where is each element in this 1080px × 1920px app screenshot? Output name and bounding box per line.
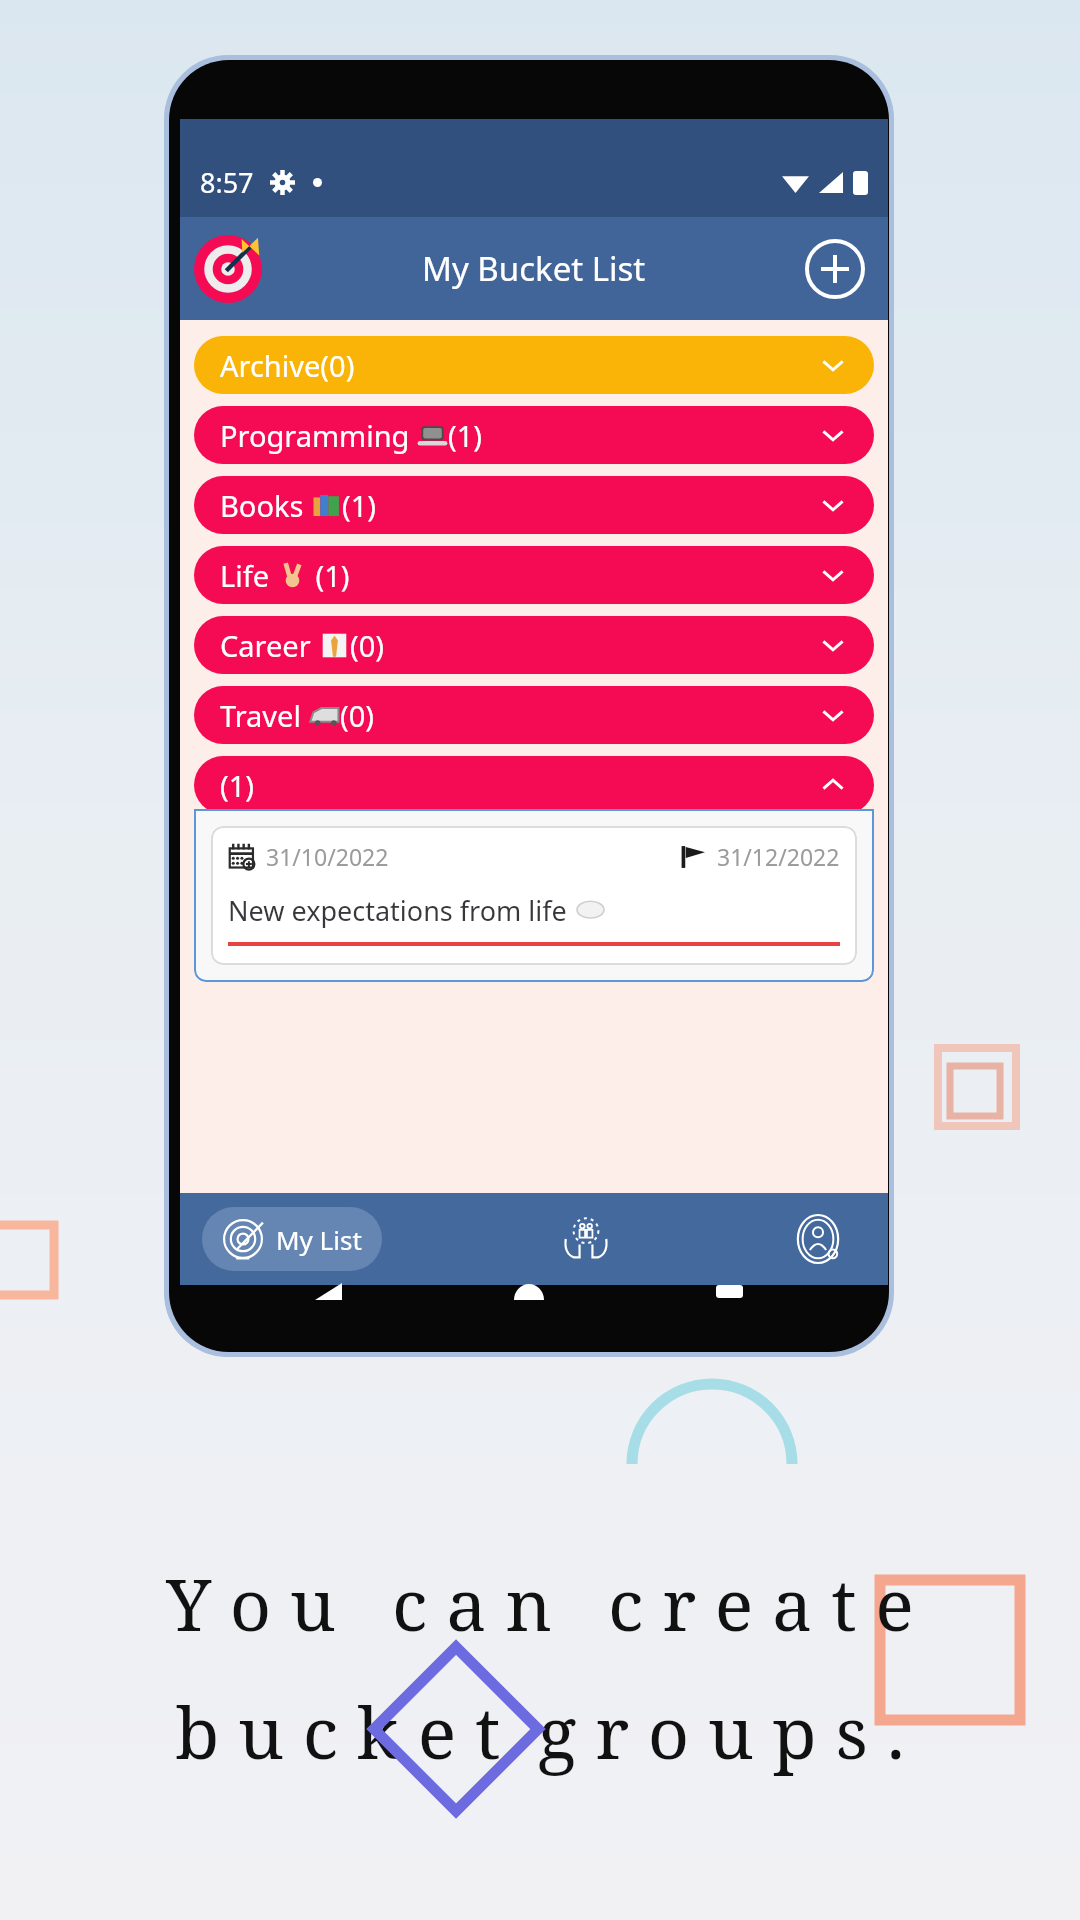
button[interactable]: Logo (194, 235, 262, 303)
staticText: b u c k e t g r o u p s . (175, 1682, 905, 1780)
staticText: 31/12/2022 (717, 841, 840, 872)
button[interactable]: (1) (194, 756, 874, 814)
staticText: (1) (342, 486, 376, 525)
staticText: My List (276, 1222, 362, 1257)
button[interactable]: Career (194, 616, 874, 674)
button[interactable]: Add (804, 238, 866, 300)
button[interactable]: Life (194, 546, 874, 604)
staticText: Books (220, 486, 311, 525)
staticText: New expectations from life (228, 892, 567, 929)
staticText: (0) (340, 696, 374, 735)
staticText: Travel (220, 696, 309, 735)
staticText: 8:57 (200, 164, 254, 201)
staticText: Programming (220, 416, 417, 455)
button[interactable]: Travel (194, 686, 874, 744)
staticText: (1) (448, 416, 482, 455)
button[interactable]: Books (194, 476, 874, 534)
staticText: (1) (308, 556, 350, 595)
button[interactable]: My List (202, 1207, 382, 1271)
staticText: 31/10/2022 (266, 841, 389, 872)
staticText: Y o u c a n c r e a t e (166, 1554, 914, 1652)
staticText: Life (220, 556, 277, 595)
staticText: My Bucket List (422, 246, 646, 291)
button[interactable]: Programming (194, 406, 874, 464)
button[interactable]: Profile (782, 1203, 854, 1275)
staticText: Archive(0) (220, 346, 355, 385)
staticText: (0) (350, 626, 384, 665)
button[interactable]: Archive(0) (194, 336, 874, 394)
staticText: Career (220, 626, 319, 665)
button[interactable]: 31/10/2022 (211, 826, 857, 965)
button[interactable]: Community (550, 1203, 622, 1275)
staticText: (1) (220, 766, 254, 805)
